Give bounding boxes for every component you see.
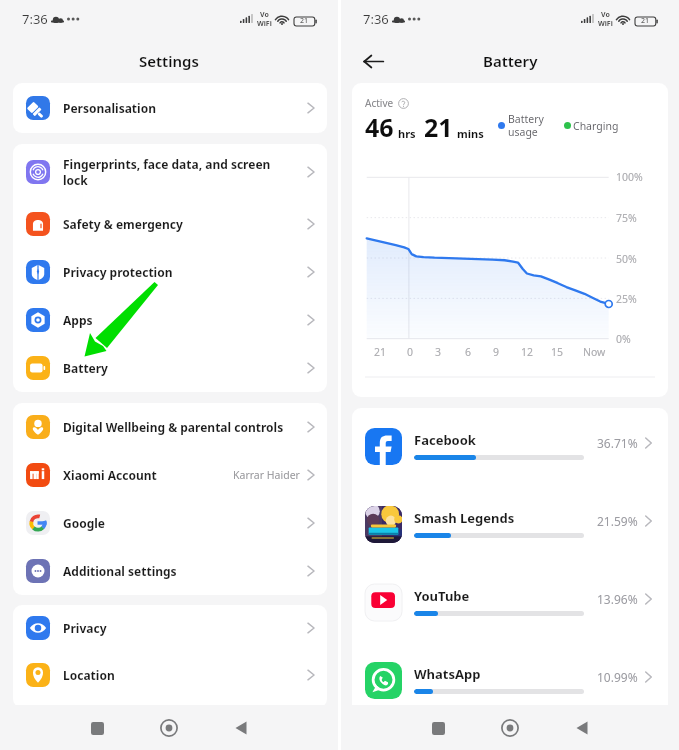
staticText: Location (63, 667, 287, 683)
button[interactable]: Privacy (13, 605, 327, 650)
button[interactable]: WhatsApp (352, 642, 668, 720)
staticText: 7:36 (22, 10, 48, 28)
button[interactable]: Recent apps (421, 711, 455, 745)
staticText: Smash Legends (414, 509, 515, 527)
button[interactable]: Personalisation (13, 83, 327, 133)
staticText: Battery usage (508, 112, 544, 139)
staticText: 36.71% (597, 435, 638, 451)
staticText: Karrar Haider (233, 468, 300, 482)
staticText: Privacy (63, 620, 287, 636)
staticText: Digital Wellbeing & parental controls (63, 419, 287, 435)
button[interactable]: Apps (13, 296, 327, 344)
button[interactable]: Safety & emergency (13, 200, 327, 248)
staticText: 13.96% (597, 591, 638, 607)
staticText: WiFi (598, 19, 613, 29)
staticText: 21.59% (597, 513, 638, 529)
staticText: hrs (398, 126, 416, 141)
button[interactable]: Home (493, 711, 527, 745)
staticText: Additional settings (63, 563, 287, 579)
staticText: 21 (641, 16, 650, 26)
staticText: 100% (616, 170, 643, 184)
staticText: 15 (551, 345, 564, 359)
staticText: 75% (616, 211, 637, 225)
button[interactable]: Fingerprints, face data, and screen lock (13, 144, 327, 200)
staticText: 9 (493, 345, 500, 359)
staticText: Privacy protection (63, 264, 287, 280)
button[interactable]: Smash Legends (352, 486, 668, 564)
staticText: 10.99% (597, 669, 638, 685)
staticText: Facebook (414, 431, 476, 449)
staticText: 6 (465, 345, 472, 359)
button[interactable]: Back (359, 47, 387, 75)
staticText: Xiaomi Account (63, 467, 233, 483)
button[interactable]: Home (152, 711, 186, 745)
staticText: Battery (63, 360, 287, 376)
staticText: 3 (435, 345, 442, 359)
button[interactable]: YouTube (352, 564, 668, 642)
staticText: YouTube (414, 587, 470, 605)
staticText: Vo (601, 10, 610, 20)
staticText: Google (63, 515, 287, 531)
button[interactable]: Location (13, 650, 327, 699)
button[interactable]: Xiaomi Account (13, 451, 327, 499)
staticText: WiFi (257, 19, 272, 29)
staticText: Active (365, 96, 394, 110)
staticText: 12 (521, 345, 534, 359)
button[interactable]: Back (224, 711, 258, 745)
staticText: WhatsApp (414, 665, 481, 683)
staticText: mins (457, 126, 484, 141)
staticText: 46 (365, 110, 394, 144)
staticText: 0 (407, 345, 414, 359)
staticText: Charging (573, 119, 619, 133)
staticText: Settings (139, 51, 199, 71)
staticText: Battery (483, 51, 538, 71)
button[interactable]: Battery (13, 344, 327, 392)
staticText: 0% (616, 332, 631, 346)
button[interactable]: Digital Wellbeing & parental controls (13, 403, 327, 451)
button[interactable]: Google (13, 499, 327, 547)
staticText: Now (583, 345, 606, 359)
staticText: 21 (300, 16, 309, 26)
button[interactable]: Additional settings (13, 547, 327, 595)
staticText: 50% (616, 252, 637, 266)
staticText: 21 (424, 110, 453, 144)
button[interactable]: Back (565, 711, 599, 745)
staticText: Safety & emergency (63, 216, 287, 232)
staticText: 7:36 (363, 10, 389, 28)
staticText: 25% (616, 292, 637, 306)
button[interactable]: Facebook (352, 408, 668, 486)
button[interactable]: Recent apps (80, 711, 114, 745)
staticText: 21 (374, 345, 387, 359)
staticText: Fingerprints, face data, and screen lock (63, 156, 287, 188)
button[interactable]: Privacy protection (13, 248, 327, 296)
staticText: Vo (260, 10, 269, 20)
staticText: Personalisation (63, 100, 287, 116)
staticText: Apps (63, 312, 287, 328)
